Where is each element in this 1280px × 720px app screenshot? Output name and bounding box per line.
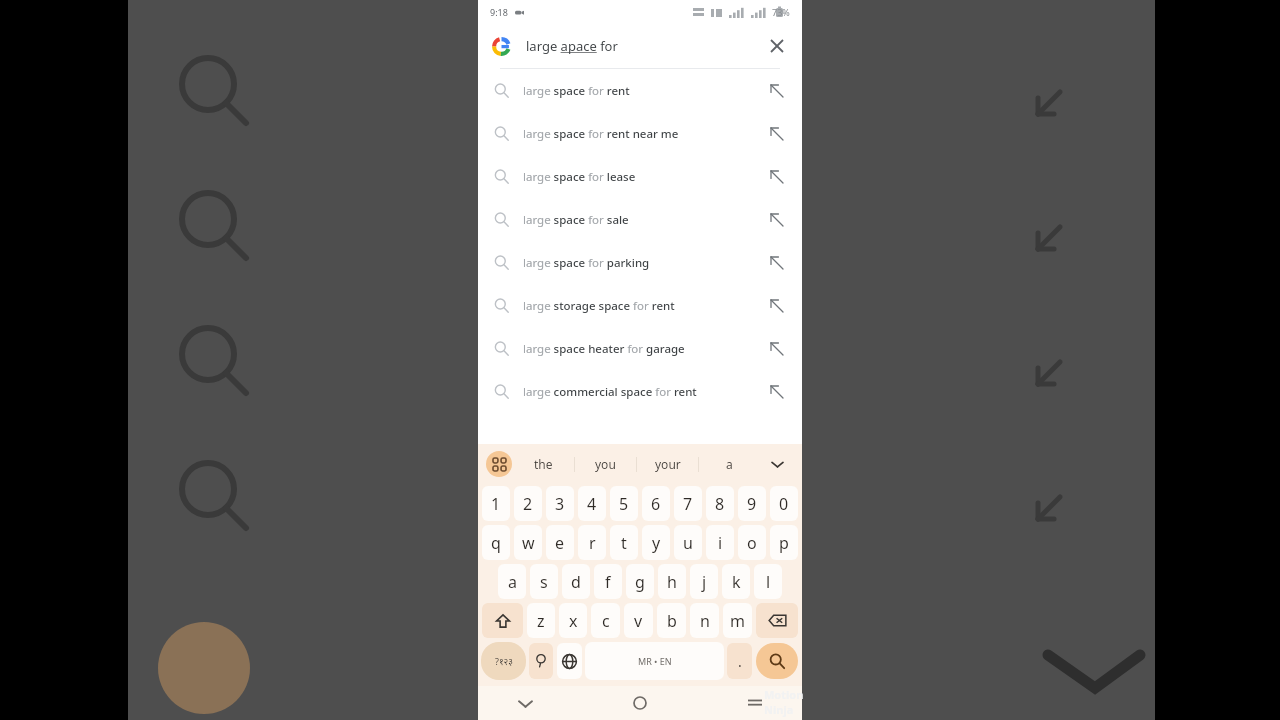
staticText: h <box>667 571 677 593</box>
staticText: 4 <box>587 493 597 515</box>
button[interactable]: you <box>575 444 636 484</box>
button[interactable]: Emoji <box>529 643 553 679</box>
staticText: 1 <box>491 493 501 515</box>
button[interactable]: Shift <box>482 603 523 638</box>
button[interactable]: 5 <box>610 486 638 521</box>
button[interactable]: Insert suggestion <box>766 209 788 231</box>
button[interactable]: g <box>626 564 654 599</box>
button[interactable]: ?१२३ <box>481 642 526 680</box>
staticText: f <box>605 571 611 593</box>
button[interactable]: Insert suggestion <box>766 381 788 403</box>
staticText: 9 <box>747 493 757 515</box>
button[interactable]: x <box>559 603 587 638</box>
button[interactable]: t <box>610 525 638 560</box>
staticText: c <box>602 610 610 632</box>
staticText: large space heater for garage <box>523 341 685 357</box>
staticText: k <box>732 571 741 593</box>
staticText: j <box>702 571 707 593</box>
staticText: u <box>683 532 693 554</box>
button[interactable]: n <box>690 603 719 638</box>
staticText: your <box>655 456 681 472</box>
button[interactable]: Expand suggestions <box>760 444 794 484</box>
button[interactable]: Insert suggestion <box>766 252 788 274</box>
button[interactable]: b <box>657 603 686 638</box>
staticText: large space for parking <box>523 255 650 271</box>
button[interactable]: u <box>674 525 702 560</box>
button[interactable]: large space for sale <box>478 198 802 241</box>
button[interactable]: 0 <box>770 486 798 521</box>
button[interactable]: Recent apps <box>738 686 772 720</box>
button[interactable]: 1 <box>482 486 510 521</box>
button[interactable]: large space for rent near me <box>478 112 802 155</box>
staticText: Ninja <box>764 702 794 717</box>
button[interactable]: large space for rent <box>478 69 802 112</box>
button[interactable]: MR • EN <box>585 642 724 680</box>
button[interactable]: z <box>527 603 555 638</box>
button[interactable]: d <box>562 564 590 599</box>
staticText: . <box>738 652 742 671</box>
staticText: 3 <box>555 493 565 515</box>
button[interactable]: m <box>723 603 752 638</box>
button[interactable]: Clear search <box>764 33 790 59</box>
button[interactable]: 4 <box>578 486 606 521</box>
staticText: z <box>537 610 545 632</box>
button[interactable]: Insert suggestion <box>766 123 788 145</box>
button[interactable]: large commercial space for rent <box>478 370 802 413</box>
button[interactable]: c <box>591 603 620 638</box>
staticText: large storage space for rent <box>523 298 675 314</box>
button[interactable]: Search <box>756 643 798 679</box>
staticText: q <box>491 532 501 554</box>
button[interactable]: a <box>699 444 760 484</box>
button[interactable]: s <box>530 564 558 599</box>
button[interactable]: y <box>642 525 670 560</box>
button[interactable]: k <box>722 564 750 599</box>
button[interactable]: large space for parking <box>478 241 802 284</box>
button[interactable]: Hide keyboard <box>508 686 542 720</box>
staticText: ?१२३ <box>495 655 513 667</box>
staticText: Motion <box>764 687 804 702</box>
button[interactable]: Change language <box>557 643 582 679</box>
button[interactable]: f <box>594 564 622 599</box>
staticText: s <box>540 571 548 593</box>
button[interactable]: h <box>658 564 686 599</box>
staticText: y <box>652 532 661 554</box>
button[interactable]: w <box>514 525 542 560</box>
button[interactable]: 9 <box>738 486 766 521</box>
button[interactable]: your <box>637 444 698 484</box>
button[interactable]: 6 <box>642 486 670 521</box>
button[interactable]: the <box>512 444 574 484</box>
button[interactable]: a <box>498 564 526 599</box>
button[interactable]: 7 <box>674 486 702 521</box>
button[interactable]: 3 <box>546 486 574 521</box>
button[interactable]: Insert suggestion <box>766 338 788 360</box>
staticText: d <box>571 571 581 593</box>
staticText: large apace for <box>526 37 618 55</box>
button[interactable]: l <box>754 564 782 599</box>
button[interactable]: v <box>624 603 653 638</box>
staticText: 7 <box>683 493 693 515</box>
staticText: b <box>667 610 677 632</box>
button[interactable]: o <box>738 525 766 560</box>
button[interactable]: e <box>546 525 574 560</box>
staticText: large commercial space for rent <box>523 384 697 400</box>
button[interactable]: Home <box>623 686 657 720</box>
button[interactable]: Insert suggestion <box>766 80 788 102</box>
staticText: g <box>635 571 645 593</box>
button[interactable]: Keyboard menu <box>486 451 512 477</box>
button[interactable]: p <box>770 525 798 560</box>
button[interactable]: 8 <box>706 486 734 521</box>
button[interactable]: j <box>690 564 718 599</box>
button[interactable]: Insert suggestion <box>766 166 788 188</box>
button[interactable]: large storage space for rent <box>478 284 802 327</box>
button[interactable]: i <box>706 525 734 560</box>
button[interactable]: r <box>578 525 606 560</box>
button[interactable]: large space for lease <box>478 155 802 198</box>
button[interactable]: 2 <box>514 486 542 521</box>
button[interactable]: Backspace <box>756 603 798 638</box>
button[interactable]: . <box>727 643 752 679</box>
button[interactable]: q <box>482 525 510 560</box>
button[interactable]: Insert suggestion <box>766 295 788 317</box>
button[interactable]: large apace for <box>478 24 802 68</box>
button[interactable]: large space heater for garage <box>478 327 802 370</box>
